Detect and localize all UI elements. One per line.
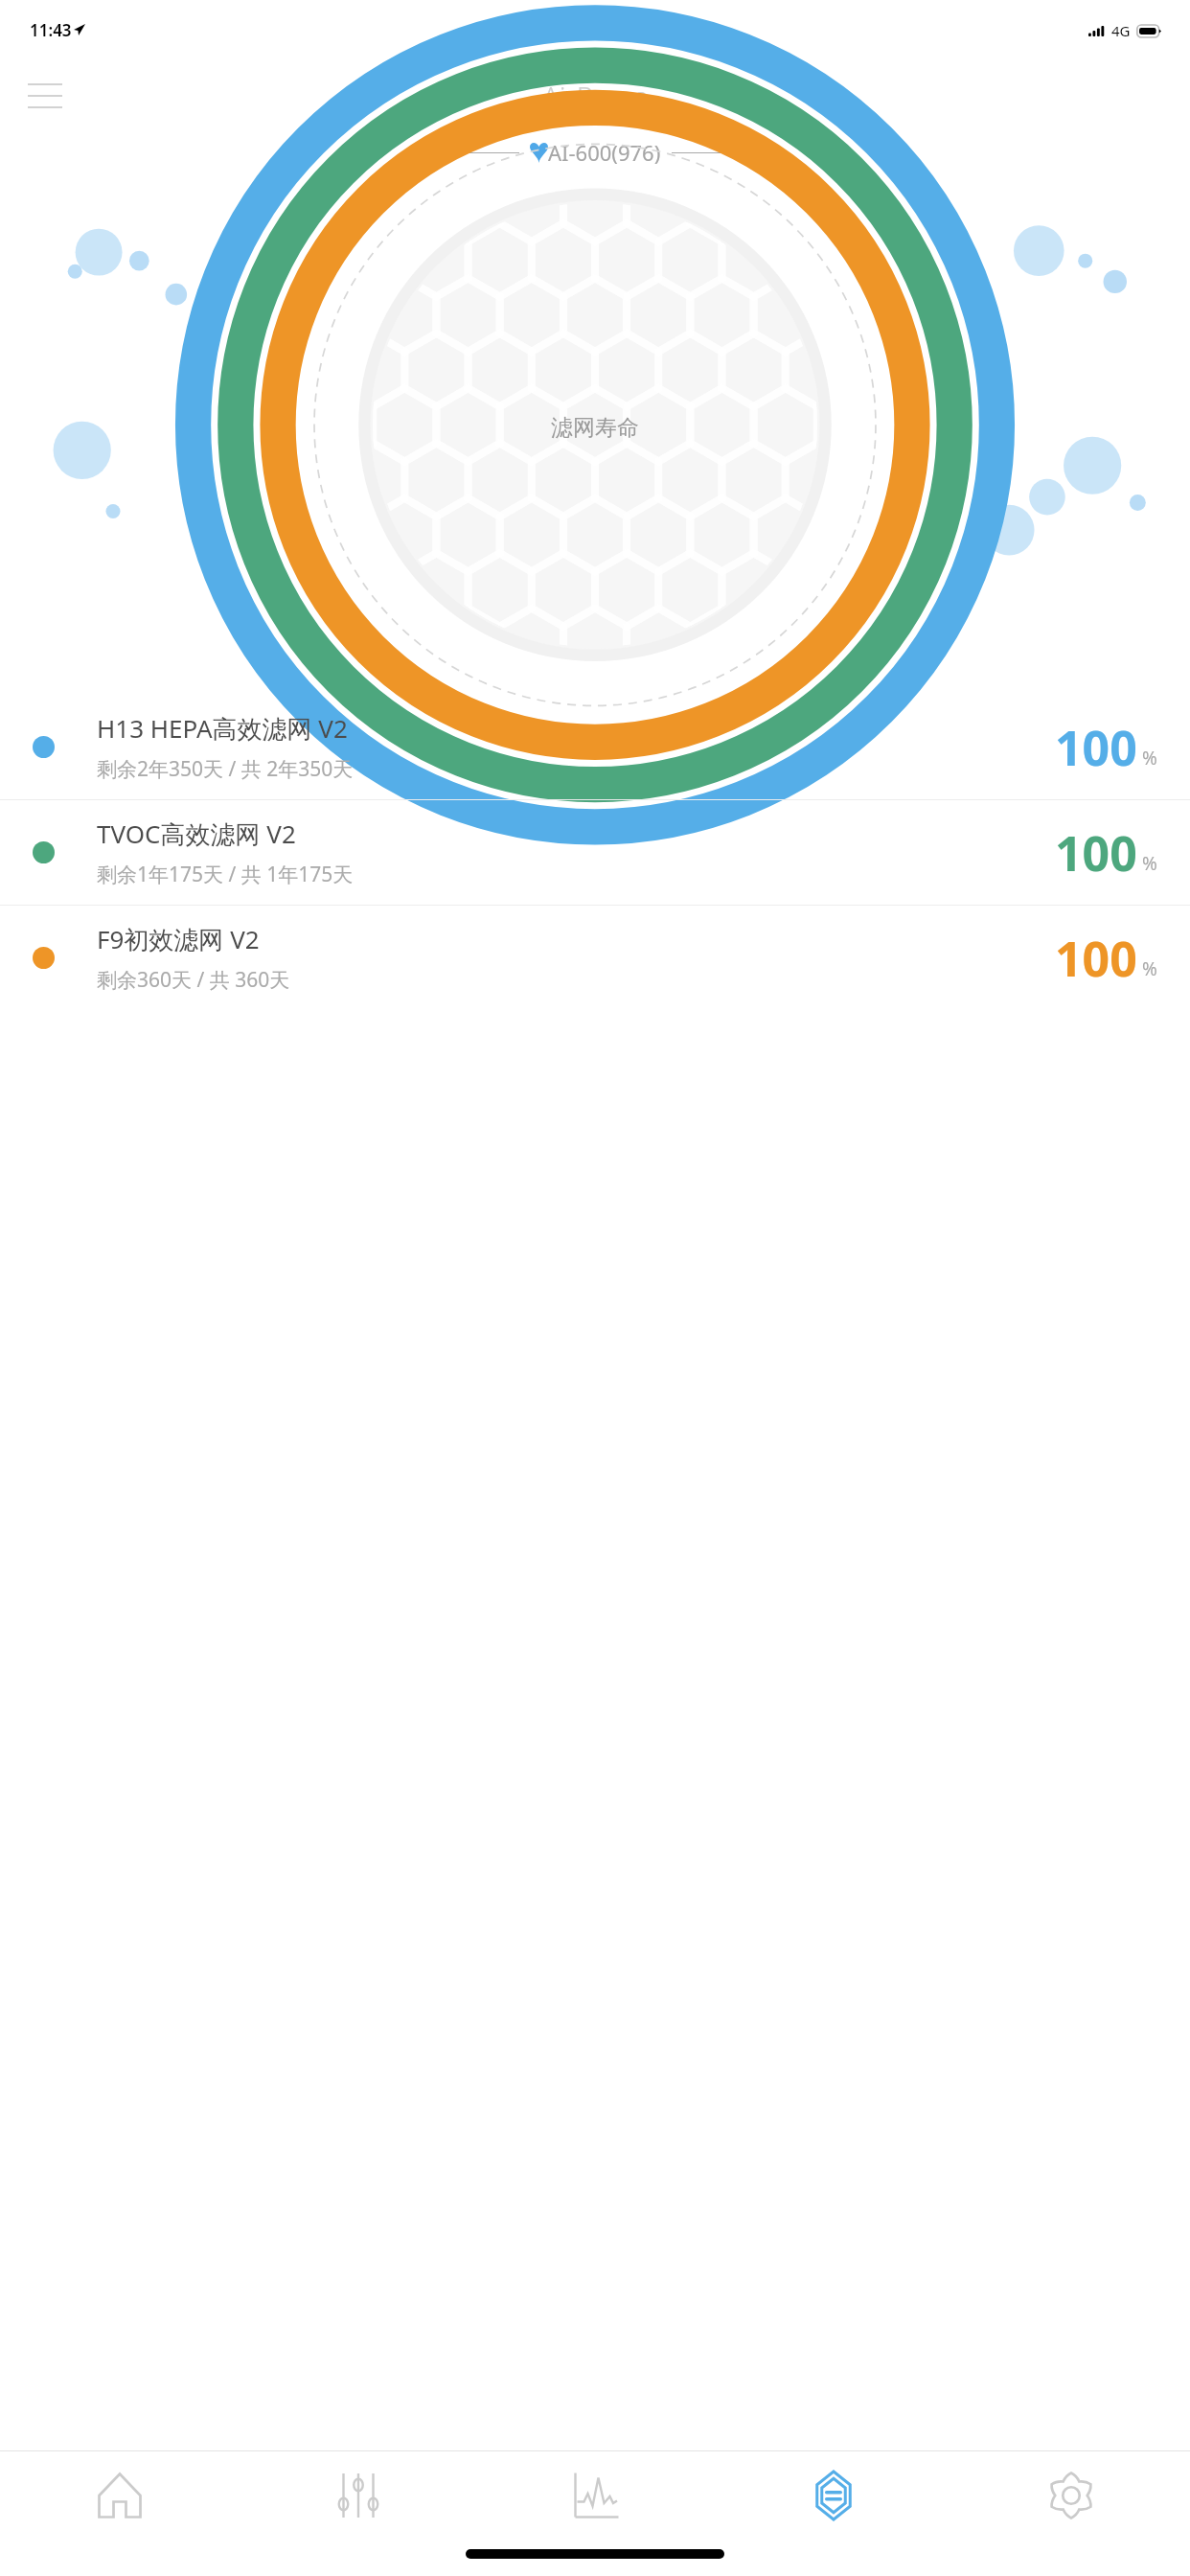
staticText: 剩余360天 / 共 360天 (97, 966, 290, 994)
button[interactable]: Controls (239, 2451, 477, 2540)
button[interactable]: Settings (952, 2451, 1190, 2540)
staticText: 滤网寿命 (551, 414, 639, 442)
staticText: % (1142, 851, 1157, 876)
button[interactable]: H13 HEPA高效滤网 V2 (0, 695, 1190, 799)
button[interactable]: Home (0, 2451, 239, 2540)
staticText: % (1142, 746, 1157, 770)
staticText: H13 HEPA高效滤网 V2 (97, 711, 348, 746)
staticText: F9初效滤网 V2 (97, 922, 260, 956)
staticText: TVOC高效滤网 V2 (97, 816, 296, 851)
button[interactable]: TVOC高效滤网 V2 (0, 800, 1190, 905)
staticText: 4G (1111, 21, 1131, 40)
button[interactable]: Statistics (477, 2451, 715, 2540)
staticText: AI-600(976) (548, 138, 661, 167)
staticText: % (1142, 956, 1157, 981)
staticText: 剩余2年350天 / 共 2年350天 (97, 755, 354, 783)
staticText: 100 (1055, 715, 1137, 780)
staticText: 剩余1年175天 / 共 1年175天 (97, 861, 354, 888)
staticText: 100 (1055, 820, 1137, 885)
staticText: 11:43 (30, 19, 72, 41)
staticText: 100 (1055, 926, 1137, 991)
button[interactable]: F9初效滤网 V2 (0, 906, 1190, 1010)
button[interactable]: Filters (715, 2451, 952, 2540)
button[interactable]: Menu (20, 73, 70, 119)
staticText: AirProce (542, 78, 649, 115)
